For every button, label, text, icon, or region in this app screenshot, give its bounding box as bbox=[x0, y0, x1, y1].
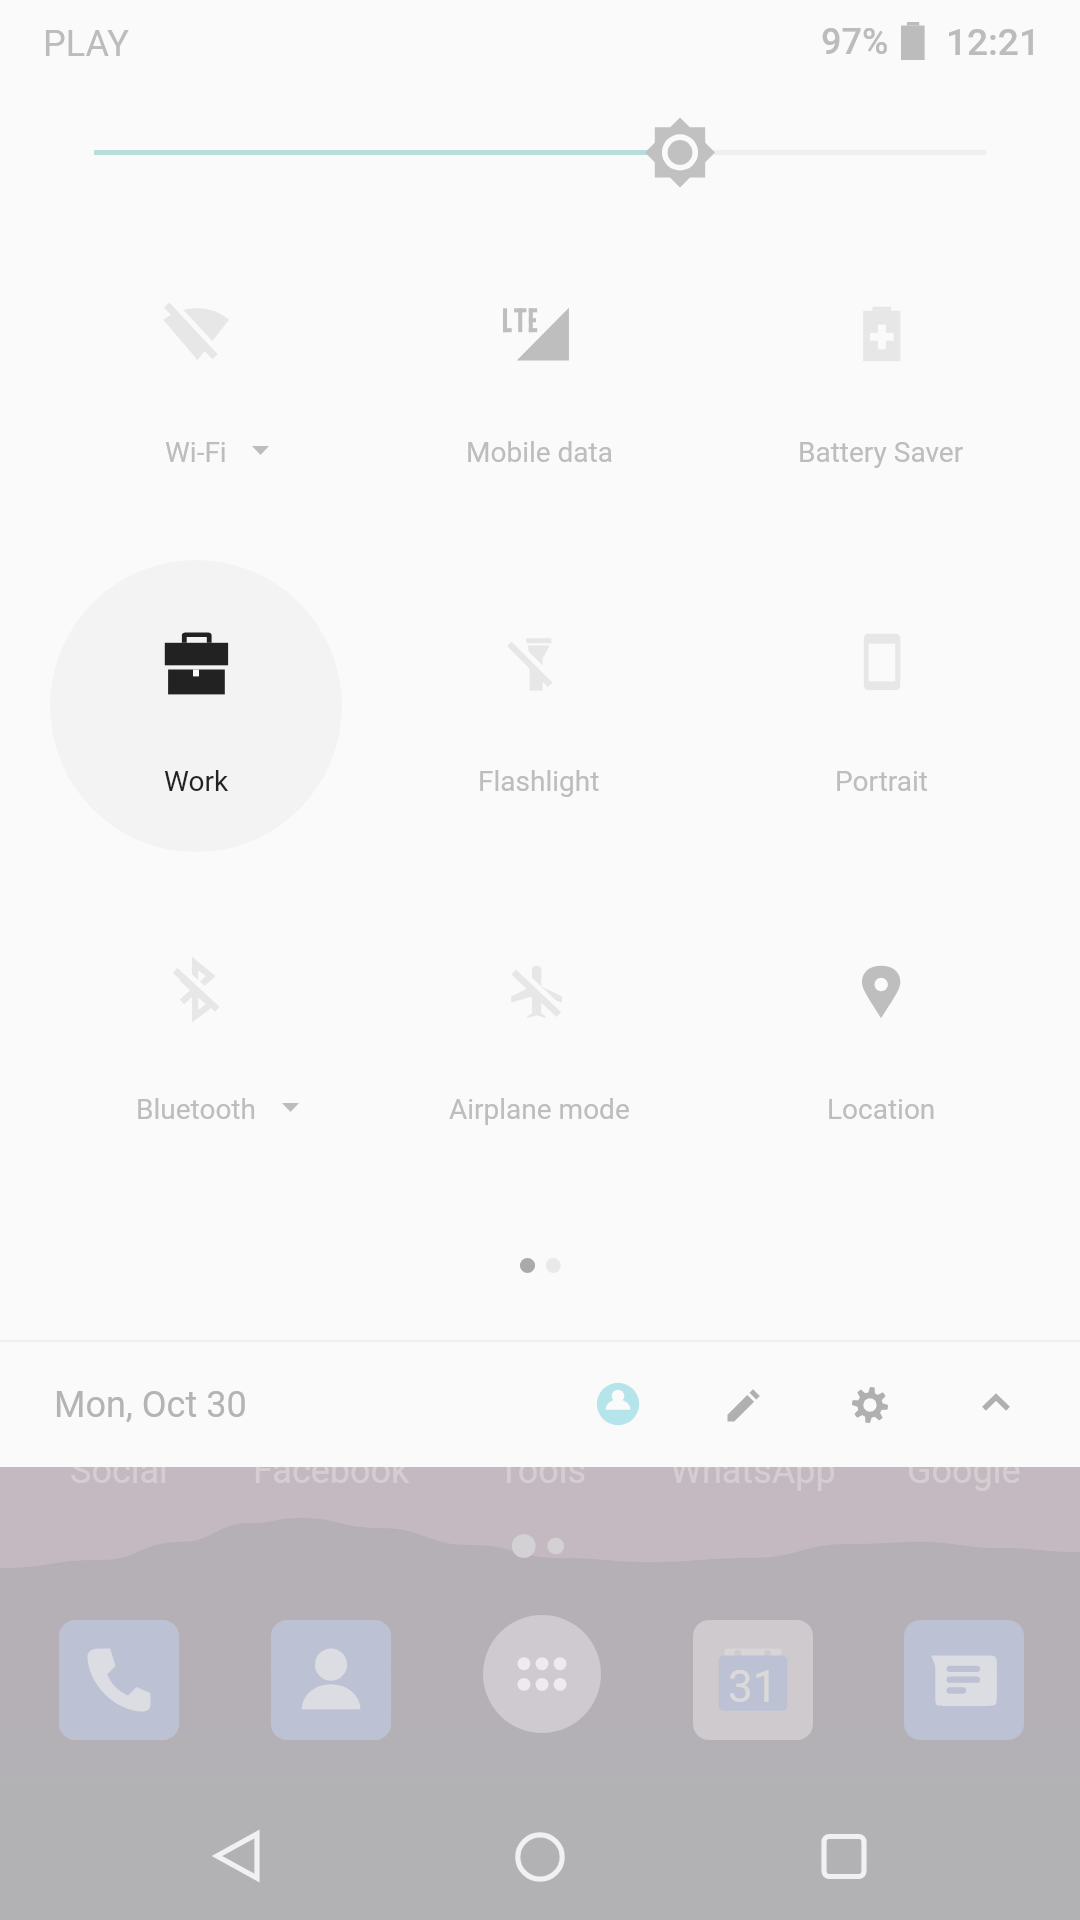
button[interactable]: Location bbox=[735, 881, 1027, 1173]
button[interactable]: App bbox=[904, 1620, 1024, 1740]
staticText: Airplane mode bbox=[449, 1093, 630, 1126]
button[interactable]: Brightness bbox=[0, 92, 1080, 212]
staticText: 31 bbox=[728, 1661, 778, 1713]
button[interactable]: Portrait bbox=[735, 552, 1027, 844]
button[interactable]: Flashlight bbox=[393, 552, 685, 844]
button[interactable]: Calendar bbox=[693, 1620, 813, 1740]
button[interactable]: Collapse bbox=[940, 1347, 1052, 1459]
button[interactable]: App bbox=[271, 1620, 391, 1740]
staticText: Mobile data bbox=[466, 436, 613, 469]
button[interactable]: All apps bbox=[483, 1615, 601, 1733]
button[interactable]: Work bbox=[50, 552, 342, 844]
staticText: WhatsApp bbox=[670, 1450, 836, 1492]
staticText: 97% bbox=[821, 21, 889, 63]
staticText: Google bbox=[907, 1450, 1021, 1492]
button[interactable]: Wi-Fi bbox=[50, 223, 342, 515]
staticText: 12:21 bbox=[946, 21, 1040, 64]
staticText: PLAY bbox=[43, 23, 129, 65]
button[interactable]: Settings bbox=[814, 1349, 926, 1461]
staticText: Location bbox=[827, 1093, 936, 1126]
staticText: Battery Saver bbox=[798, 436, 964, 469]
staticText: Mon, Oct 30 bbox=[54, 1384, 247, 1426]
button[interactable]: Mobile data bbox=[393, 223, 685, 515]
staticText: Wi-Fi bbox=[165, 436, 227, 469]
button[interactable]: Battery Saver bbox=[735, 223, 1027, 515]
staticText: Flashlight bbox=[478, 765, 600, 798]
staticText: Portrait bbox=[835, 765, 928, 798]
staticText: Bluetooth bbox=[136, 1093, 256, 1126]
button[interactable]: Airplane mode bbox=[393, 881, 685, 1173]
button[interactable]: User bbox=[562, 1348, 674, 1460]
staticText: Work bbox=[164, 765, 229, 798]
button[interactable]: Bluetooth bbox=[50, 881, 342, 1173]
button[interactable]: App bbox=[59, 1620, 179, 1740]
staticText: Facebook bbox=[253, 1450, 410, 1492]
staticText: Tools bbox=[498, 1450, 587, 1492]
staticText: Social bbox=[70, 1450, 168, 1492]
button[interactable]: Edit bbox=[688, 1349, 800, 1461]
